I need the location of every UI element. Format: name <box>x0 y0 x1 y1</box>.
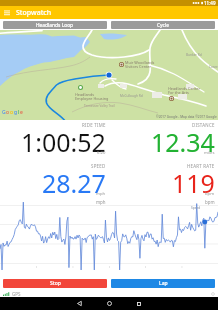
staticText: Muir Woodlands Visitors Center <box>125 60 155 70</box>
staticText: miles <box>204 150 215 156</box>
staticText: HEART RATE <box>187 163 215 169</box>
button[interactable]: Home <box>94 297 124 310</box>
staticText: Bunker Rd <box>186 53 202 57</box>
staticText: l <box>18 109 20 116</box>
staticText: G <box>2 109 6 116</box>
staticText: bpm <box>205 191 215 197</box>
staticText: mph <box>96 199 106 205</box>
staticText: Headlands Center For the Arts <box>168 86 200 96</box>
staticText: g <box>14 109 18 116</box>
staticText: 1:00:52 <box>21 125 106 159</box>
staticText: mph <box>96 191 106 197</box>
staticText: ©2017 Google - Map data ©2017 Google <box>156 115 217 119</box>
staticText: Cycle <box>157 22 169 29</box>
staticText: 11:49 <box>204 0 216 6</box>
button[interactable]: Lap <box>111 279 215 288</box>
button[interactable]: Menu <box>0 6 14 19</box>
staticText: McCullough Rd <box>120 94 143 98</box>
button[interactable]: Cycle <box>111 21 215 29</box>
staticText: Lap <box>159 280 168 287</box>
staticText: SPEED <box>91 163 106 169</box>
staticText: Headlands Employee Housing <box>75 92 109 102</box>
button[interactable]: Back <box>64 297 94 310</box>
button[interactable]: Recents <box>124 297 154 310</box>
staticText: Speed <box>191 206 201 210</box>
staticText: Tennessee Valley Trail <box>84 104 115 108</box>
staticText: 119 <box>172 166 215 197</box>
staticText: e <box>20 109 23 116</box>
staticText: Conzelman Rd <box>209 65 218 69</box>
button[interactable]: Headlands Loop <box>3 21 107 29</box>
staticText: DISTANCE <box>192 122 215 128</box>
button[interactable]: Stop <box>3 279 107 288</box>
staticText: RIDE TIME <box>82 122 106 128</box>
staticText: 12.34 <box>151 125 215 159</box>
staticText: o <box>10 109 14 116</box>
staticText: GPS <box>12 291 21 297</box>
staticText: 6:20 <box>97 150 106 156</box>
staticText: Stop <box>50 280 61 287</box>
staticText: 28.27 <box>42 166 106 197</box>
staticText: Headlands Loop <box>36 22 74 29</box>
staticText: o <box>6 109 10 116</box>
staticText: bpm <box>205 199 215 205</box>
staticText: Stopwatch <box>16 8 52 18</box>
